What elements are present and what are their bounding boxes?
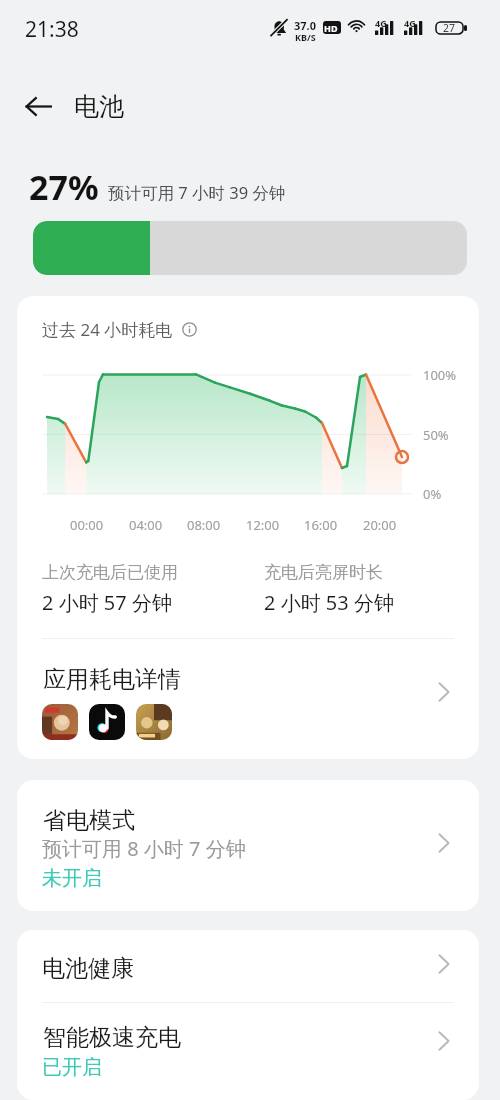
staticText: 省电模式 bbox=[43, 806, 135, 835]
staticText: 4G bbox=[404, 17, 416, 29]
staticText: 智能极速充电 bbox=[43, 1023, 181, 1052]
staticText: 27 bbox=[443, 21, 456, 35]
staticText: 预计可用 7 小时 39 分钟 bbox=[108, 181, 286, 204]
staticText: 充电后亮屏时长 bbox=[264, 562, 383, 583]
button[interactable]: Back bbox=[14, 82, 62, 130]
staticText: 12:00 bbox=[246, 516, 280, 534]
staticText: 应用耗电详情 bbox=[43, 665, 181, 694]
button[interactable]: 省电模式 bbox=[17, 780, 479, 911]
staticText: 电池 bbox=[74, 91, 124, 122]
staticText: 已开启 bbox=[42, 1055, 102, 1080]
staticText: KB/S bbox=[295, 31, 316, 43]
button[interactable]: 智能极速充电 bbox=[17, 1003, 479, 1100]
staticText: 00:00 bbox=[70, 516, 104, 534]
staticText: 预计可用 8 小时 7 分钟 bbox=[42, 835, 246, 862]
staticText: 未开启 bbox=[42, 866, 102, 891]
staticText: 过去 24 小时耗电 bbox=[42, 318, 173, 341]
staticText: 50% bbox=[423, 426, 449, 444]
staticText: 21:38 bbox=[25, 15, 79, 44]
button[interactable]: 电池健康 bbox=[17, 930, 479, 1002]
staticText: 27% bbox=[29, 164, 99, 210]
staticText: 上次充电后已使用 bbox=[42, 562, 178, 583]
button[interactable]: 应用耗电详情 bbox=[17, 639, 479, 759]
staticText: 20:00 bbox=[363, 516, 397, 534]
staticText: HD bbox=[324, 22, 338, 34]
staticText: 2 小时 57 分钟 bbox=[42, 589, 172, 616]
staticText: 37.0 bbox=[294, 18, 316, 33]
staticText: 100% bbox=[423, 366, 457, 384]
staticText: 0% bbox=[423, 485, 442, 503]
staticText: 电池健康 bbox=[42, 954, 134, 983]
staticText: 4G bbox=[375, 17, 387, 29]
staticText: 2 小时 53 分钟 bbox=[264, 589, 394, 616]
staticText: 04:00 bbox=[129, 516, 163, 534]
staticText: 16:00 bbox=[304, 516, 338, 534]
staticText: 08:00 bbox=[187, 516, 221, 534]
